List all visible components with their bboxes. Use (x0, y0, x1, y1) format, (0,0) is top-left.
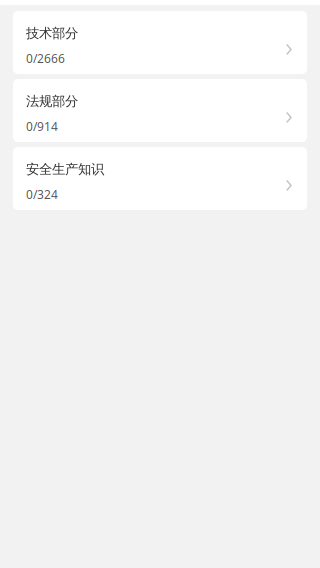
staticText: 安全生产知识 (26, 161, 104, 178)
staticText: 法规部分 (26, 93, 78, 110)
staticText: 0/324 (26, 186, 58, 203)
staticText: 技术部分 (26, 25, 78, 42)
button[interactable]: 法规部分 (13, 79, 307, 142)
button[interactable]: 安全生产知识 (13, 147, 307, 210)
staticText: 0/2666 (26, 50, 65, 67)
button[interactable]: 技术部分 (13, 11, 307, 74)
staticText: 0/914 (26, 118, 58, 135)
